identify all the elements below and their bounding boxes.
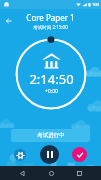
staticText: 2:14:50 [29,70,74,88]
staticText: 100 [92,2,99,7]
button[interactable]: Home [44,166,58,180]
button[interactable]: Back [2,14,16,28]
staticText: +0:00 [45,88,58,95]
button[interactable]: Back [15,166,29,180]
button[interactable]: Pause [40,145,59,164]
staticText: 考试时间 2:15:00 [33,24,68,30]
button[interactable]: Finish [72,147,87,162]
staticText: 考试进行中 [37,132,65,139]
staticText: Core Paper 1 [26,12,75,23]
button[interactable]: Recents [72,166,86,180]
button[interactable]: 考试进行中 [11,129,90,142]
button[interactable]: Settings [14,149,26,161]
